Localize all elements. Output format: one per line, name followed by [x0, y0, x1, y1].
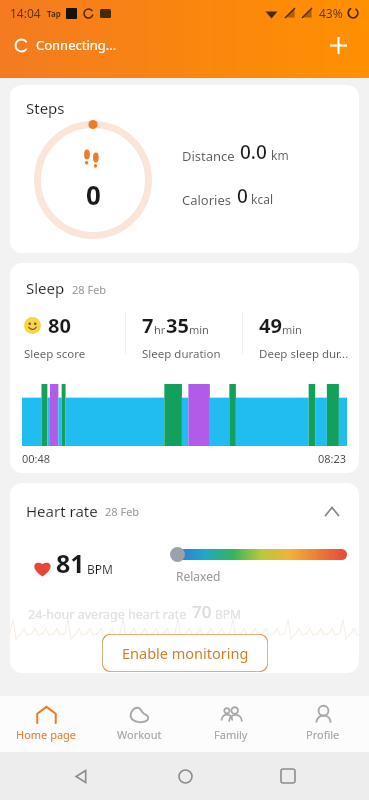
staticText: km: [271, 147, 289, 163]
staticText: Tap: [47, 8, 61, 19]
staticText: 28 Feb: [72, 282, 107, 297]
staticText: 80: [48, 312, 71, 339]
staticText: 0: [237, 183, 248, 209]
button[interactable]: Profile: [277, 696, 369, 752]
button[interactable]: Add device: [321, 28, 355, 62]
staticText: Workout: [117, 727, 162, 742]
staticText: Profile: [306, 727, 340, 742]
staticText: Connecting...: [36, 36, 117, 54]
button[interactable]: Steps: [10, 85, 359, 253]
staticText: Family: [214, 727, 248, 742]
staticText: BPM: [215, 606, 241, 622]
staticText: 00:48: [22, 451, 51, 466]
staticText: 0.0: [240, 139, 267, 165]
staticText: Distance: [182, 147, 235, 165]
button[interactable]: Home page: [0, 696, 93, 752]
button[interactable]: Family: [185, 696, 277, 752]
staticText: BPM: [87, 561, 113, 577]
staticText: Deep sleep dur...: [259, 346, 349, 362]
button[interactable]: Workout: [93, 696, 185, 752]
button[interactable]: Sleep: [10, 263, 359, 473]
staticText: Sleep: [26, 278, 65, 298]
staticText: hr: [154, 322, 166, 337]
button[interactable]: Collapse: [319, 498, 345, 524]
staticText: 35: [166, 312, 189, 339]
staticText: Sleep score: [24, 346, 86, 362]
staticText: Steps: [26, 98, 65, 118]
staticText: kcal: [251, 191, 273, 207]
staticText: Relaxed: [176, 568, 221, 584]
staticText: 24-hour average heart rate: [28, 606, 187, 623]
button[interactable]: Enable monitoring: [102, 634, 268, 672]
staticText: 7: [142, 312, 154, 339]
staticText: 43%: [319, 5, 343, 21]
button[interactable]: Home: [162, 753, 208, 799]
staticText: 0: [86, 177, 101, 212]
button[interactable]: Recent apps: [265, 753, 311, 799]
staticText: Home page: [16, 727, 77, 742]
staticText: Enable monitoring: [122, 643, 249, 663]
staticText: Heart rate: [26, 501, 98, 521]
staticText: Calories: [182, 191, 232, 209]
staticText: 70: [192, 600, 212, 623]
staticText: min: [282, 322, 302, 337]
staticText: 28 Feb: [105, 504, 140, 519]
button[interactable]: Back: [58, 753, 104, 799]
staticText: min: [189, 322, 209, 337]
staticText: 81: [56, 546, 85, 580]
staticText: Sleep duration: [142, 346, 221, 362]
staticText: 14:04: [10, 5, 41, 21]
staticText: 08:23: [318, 451, 347, 466]
staticText: 49: [259, 312, 282, 339]
